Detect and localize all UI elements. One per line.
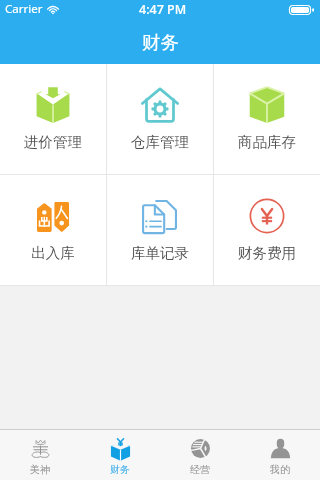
staticText: 我的 (270, 463, 290, 476)
staticText: 美神 (30, 463, 50, 476)
staticText: Carrier (5, 1, 43, 17)
button[interactable]: 进价管理 (0, 64, 106, 174)
staticText: 库单记录 (131, 244, 189, 262)
button[interactable]: 商品库存 (214, 64, 320, 174)
staticText: 出入库 (31, 244, 75, 262)
staticText: 商品库存 (238, 133, 296, 151)
button[interactable]: 财务 (80, 430, 160, 480)
staticText: 财务费用 (238, 244, 296, 262)
staticText: 4:47 PM (139, 1, 187, 18)
staticText: 财务 (110, 463, 130, 476)
staticText: 财务 (142, 31, 179, 54)
button[interactable]: 财务费用 (214, 175, 320, 285)
staticText: 进价管理 (24, 133, 82, 151)
staticText: 经营 (190, 463, 210, 476)
button[interactable]: 我的 (240, 430, 320, 480)
button[interactable]: 经营 (160, 430, 240, 480)
button[interactable]: 出入库 (0, 175, 106, 285)
staticText: 仓库管理 (131, 133, 189, 151)
button[interactable]: 库单记录 (107, 175, 213, 285)
button[interactable]: 美神 (0, 430, 80, 480)
button[interactable]: 仓库管理 (107, 64, 213, 174)
